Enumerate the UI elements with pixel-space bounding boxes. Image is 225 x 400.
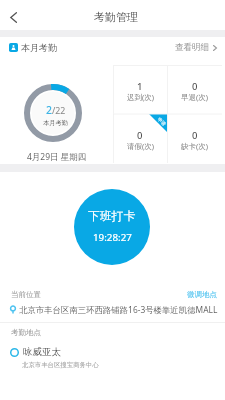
button[interactable]: 咏威亚太	[0, 344, 225, 360]
staticText: 当前位置	[11, 290, 41, 299]
staticText: 考勤管理	[94, 10, 138, 24]
staticText: 0	[192, 80, 198, 93]
button[interactable]: 本月考勤	[9, 42, 57, 53]
button[interactable]: 0	[167, 65, 222, 114]
staticText: 下班打卡	[88, 209, 136, 224]
staticText: 北京市丰台区南三环西路铺路16-3号楼靠近凯德MALL	[19, 304, 218, 315]
staticText: 考勤地点	[11, 328, 41, 337]
staticText: 缺卡(次)	[181, 141, 208, 151]
staticText: 查看明细	[175, 42, 209, 53]
button[interactable]: 微调地点	[179, 288, 225, 301]
button[interactable]: 下班打卡	[74, 189, 150, 265]
staticText: 本月考勤	[43, 119, 68, 127]
staticText: 咏威亚太	[23, 346, 61, 358]
staticText: 1	[137, 80, 143, 93]
button[interactable]: 0	[167, 114, 222, 163]
staticText: 本月考勤	[21, 42, 57, 53]
button[interactable]: 1	[113, 65, 167, 114]
button[interactable]: 查看明细	[175, 42, 225, 53]
staticText: 请假(次)	[127, 141, 154, 151]
staticText: 0	[137, 129, 143, 142]
staticText: 2/22	[46, 103, 66, 117]
staticText: 早退(次)	[181, 92, 208, 102]
staticText: 申请	[156, 117, 167, 127]
staticText: 微调地点	[187, 290, 217, 299]
staticText: 0	[192, 129, 198, 142]
staticText: 北京市丰台区搜宝商务中心	[22, 361, 99, 369]
button[interactable]: Back	[0, 2, 26, 32]
staticText: 4月29日 星期四	[27, 151, 87, 163]
staticText: 19:28:27	[93, 231, 132, 244]
button[interactable]: 0	[113, 114, 167, 163]
staticText: 迟到(次)	[127, 92, 154, 102]
